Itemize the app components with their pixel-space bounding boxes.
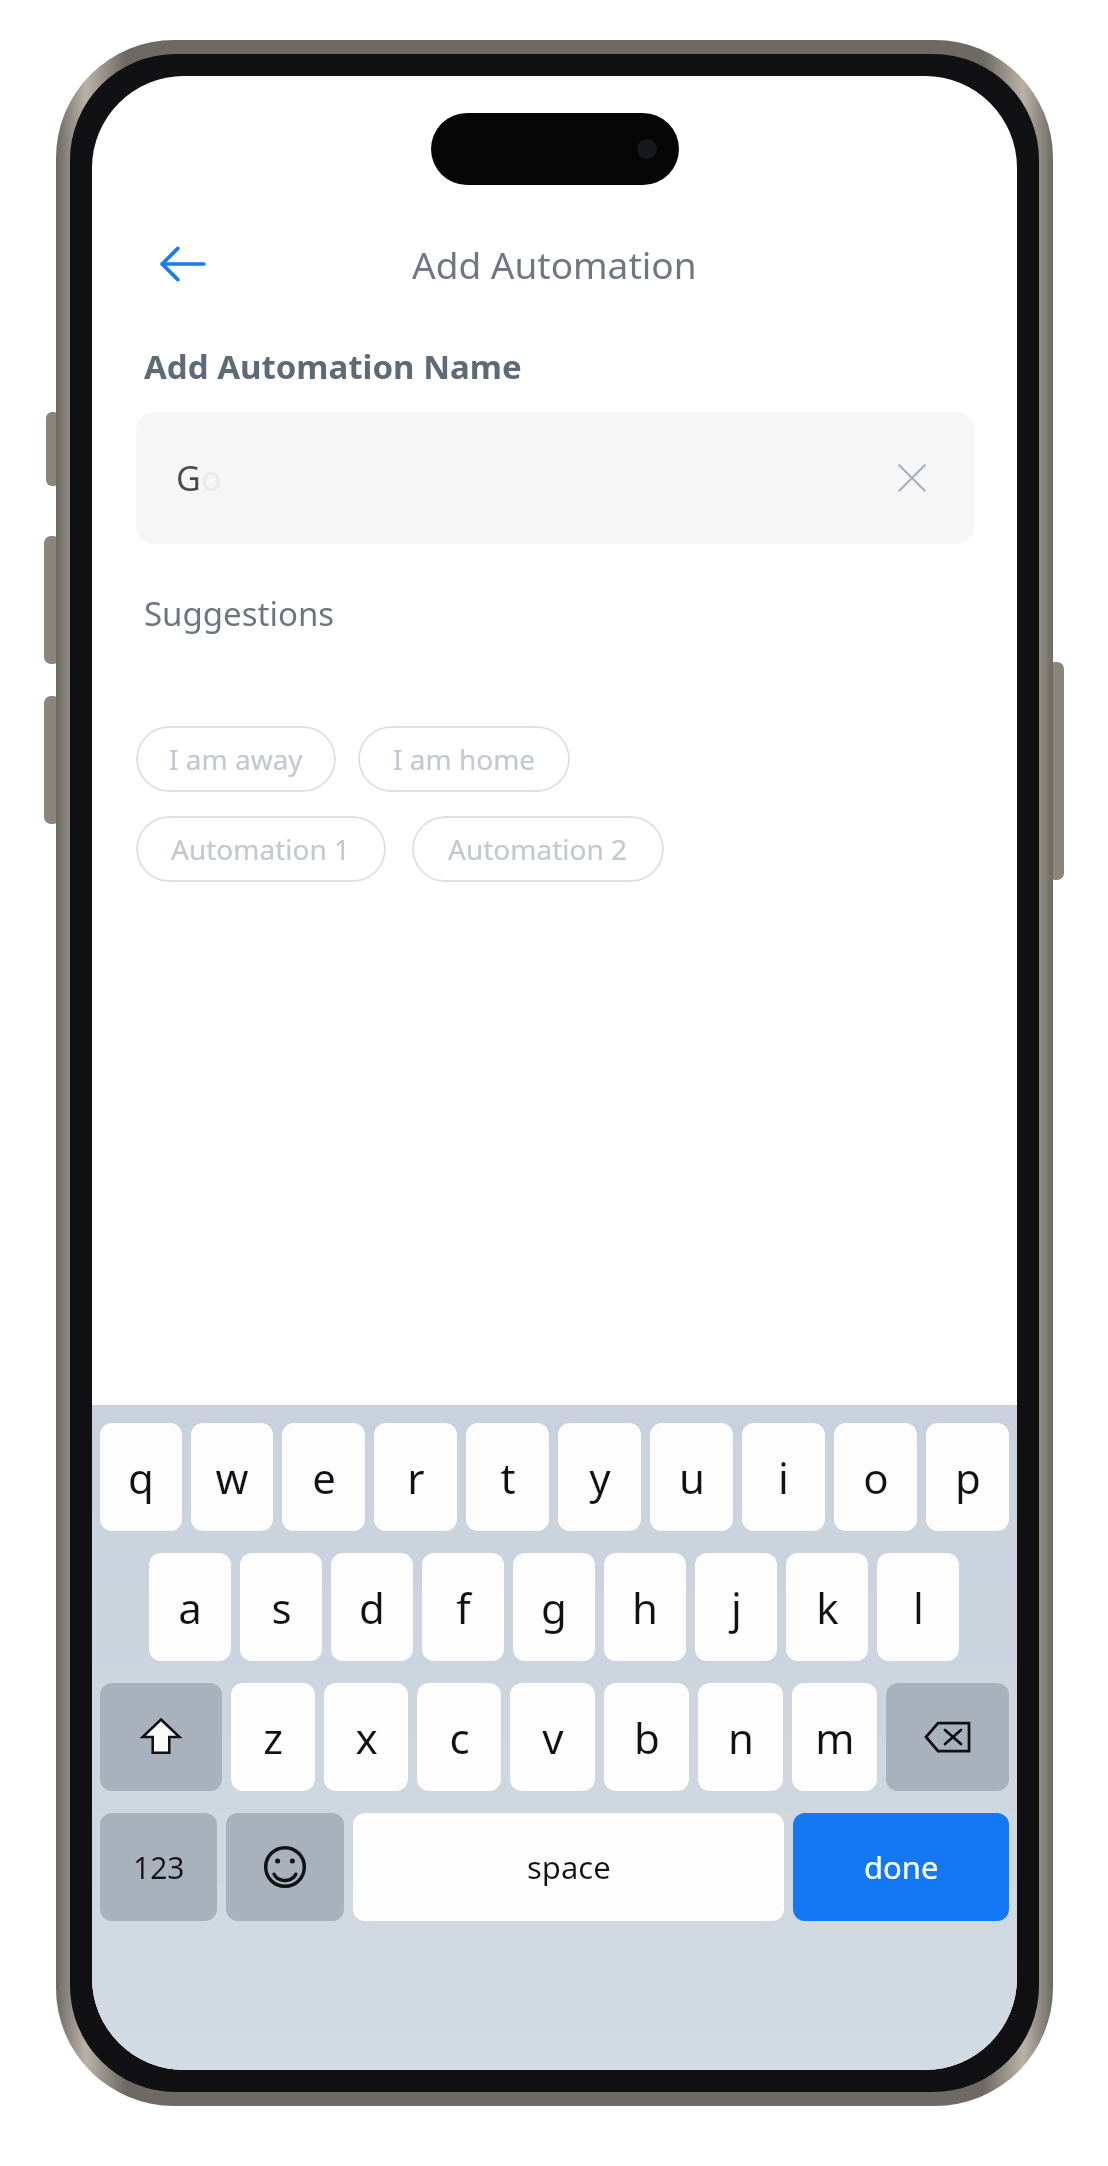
staticText: b <box>634 1709 660 1766</box>
button[interactable]: G <box>136 412 974 544</box>
staticText: f <box>456 1579 471 1636</box>
button[interactable]: g <box>513 1553 595 1661</box>
button[interactable]: u <box>650 1423 733 1531</box>
staticText: q <box>128 1449 154 1506</box>
button[interactable]: h <box>604 1553 686 1661</box>
staticText: w <box>215 1449 249 1506</box>
staticText: m <box>815 1709 855 1766</box>
staticText: Automation 2 <box>448 830 628 868</box>
staticText: t <box>500 1449 516 1506</box>
staticText: space <box>527 1846 611 1888</box>
button[interactable]: space <box>353 1813 784 1921</box>
button[interactable]: a <box>149 1553 231 1661</box>
button[interactable]: m <box>792 1683 877 1791</box>
button[interactable]: p <box>926 1423 1009 1531</box>
button[interactable]: Clear text <box>872 438 952 518</box>
button[interactable]: s <box>240 1553 322 1661</box>
button[interactable]: k <box>786 1553 868 1661</box>
staticText: 123 <box>133 1847 185 1888</box>
button[interactable]: y <box>558 1423 641 1531</box>
staticText: i <box>778 1449 789 1506</box>
button[interactable]: Shift <box>100 1683 222 1791</box>
staticText: Automation 1 <box>171 830 351 868</box>
staticText: u <box>679 1449 705 1506</box>
button[interactable]: w <box>191 1423 273 1531</box>
staticText: k <box>816 1579 839 1636</box>
button[interactable]: I am home <box>358 726 570 792</box>
button[interactable]: i <box>742 1423 825 1531</box>
staticText: p <box>955 1449 981 1506</box>
staticText: g <box>541 1579 567 1636</box>
button[interactable]: t <box>466 1423 549 1531</box>
staticText: Suggestions <box>144 591 335 636</box>
staticText: l <box>913 1579 924 1636</box>
button[interactable]: j <box>695 1553 777 1661</box>
button[interactable]: q <box>100 1423 182 1531</box>
staticText: d <box>359 1579 385 1636</box>
staticText: Add Automation <box>412 239 697 289</box>
staticText: x <box>355 1709 378 1766</box>
button[interactable]: Emoji <box>226 1813 344 1921</box>
button[interactable]: e <box>282 1423 365 1531</box>
button[interactable]: c <box>417 1683 501 1791</box>
button[interactable]: o <box>834 1423 917 1531</box>
staticText: o <box>863 1449 889 1506</box>
staticText: z <box>263 1709 283 1766</box>
staticText: s <box>271 1579 292 1636</box>
staticText: G <box>176 455 201 501</box>
button[interactable]: d <box>331 1553 413 1661</box>
button[interactable]: 123 <box>100 1813 217 1921</box>
button[interactable]: b <box>604 1683 689 1791</box>
staticText: I am away <box>169 740 303 778</box>
staticText: y <box>589 1449 611 1506</box>
staticText: j <box>731 1579 742 1636</box>
button[interactable]: r <box>374 1423 457 1531</box>
button[interactable]: n <box>698 1683 783 1791</box>
staticText: a <box>178 1579 202 1636</box>
button[interactable]: f <box>422 1553 504 1661</box>
staticText: done <box>864 1846 939 1888</box>
staticText: o <box>201 455 222 501</box>
button[interactable]: Back <box>140 222 224 306</box>
button[interactable]: l <box>877 1553 959 1661</box>
button[interactable]: v <box>510 1683 595 1791</box>
staticText: e <box>312 1449 336 1506</box>
staticText: Add Automation Name <box>144 344 522 389</box>
staticText: r <box>407 1449 425 1506</box>
staticText: v <box>542 1709 564 1766</box>
staticText: n <box>728 1709 754 1766</box>
button[interactable]: z <box>231 1683 315 1791</box>
staticText: c <box>449 1709 470 1766</box>
button[interactable]: x <box>324 1683 408 1791</box>
staticText: h <box>632 1579 658 1636</box>
button[interactable]: Backspace <box>886 1683 1009 1791</box>
button[interactable]: Automation 2 <box>412 816 664 882</box>
button[interactable]: Automation 1 <box>136 816 386 882</box>
button[interactable]: I am away <box>136 726 336 792</box>
staticText: I am home <box>393 740 536 778</box>
button[interactable]: done <box>793 1813 1009 1921</box>
